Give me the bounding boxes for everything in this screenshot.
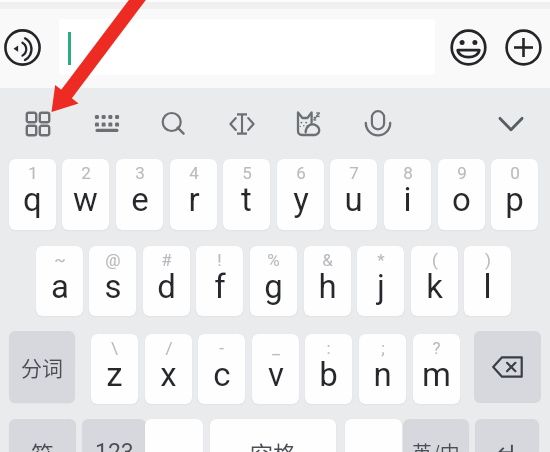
staticText: w [73,180,98,219]
staticText: * [377,250,385,270]
button[interactable]: Backspace [474,331,541,403]
staticText: 3 [135,163,145,183]
button[interactable]: Keyboard layouts [23,109,53,139]
staticText: g [264,267,283,306]
button[interactable]: 分词 [9,331,75,403]
staticText: l [483,267,492,306]
button[interactable]: 7 [330,159,377,230]
staticText: ) [485,250,491,270]
staticText: z [106,355,123,394]
staticText: m [422,355,451,394]
button[interactable]: Hide keyboard [496,109,526,139]
button[interactable]: Keyboard [92,109,122,139]
staticText: d [157,267,176,306]
staticText: 5 [242,163,252,183]
button[interactable]: 9 [438,159,485,230]
button[interactable]: ) [464,246,511,316]
staticText: / [165,338,173,358]
button[interactable]: ! [196,246,243,316]
button[interactable]: * [357,246,404,316]
staticText: 8 [403,163,413,183]
staticText: ; [381,338,385,358]
button[interactable]: # [143,246,190,316]
button[interactable]: % [250,246,297,316]
button[interactable]: 英/中 [403,419,469,452]
staticText: c [213,355,231,394]
button[interactable]: Voice input [363,108,393,138]
button[interactable]: 5 [223,159,270,230]
staticText: ~ [54,250,66,270]
staticText: % [267,250,280,270]
button[interactable]: 1 [9,159,56,230]
staticText: e [131,180,149,219]
staticText: o [452,180,471,219]
staticText: j [377,267,385,306]
button[interactable]: @ [89,246,136,316]
staticText: 123 [95,439,134,452]
button[interactable]: ↵ [475,419,539,452]
staticText: 空格 [250,436,296,452]
button[interactable]: Stickers [295,109,325,139]
staticText: 2 [81,163,91,183]
staticText: 9 [457,163,467,183]
button[interactable]: ? [413,334,460,404]
staticText: b [319,355,338,394]
staticText: 分词 [21,352,63,382]
button[interactable]: 123 [82,419,146,452]
button[interactable]: 符 [9,419,76,452]
button[interactable]: ~ [36,246,83,316]
button[interactable]: Add [505,29,542,66]
button[interactable]: Move cursor [227,109,257,139]
button[interactable]: & [304,246,351,316]
button[interactable] [59,19,435,75]
staticText: ? [432,338,441,358]
button[interactable]: 8 [384,159,431,230]
button[interactable]: ; [359,334,406,404]
staticText: n [373,355,392,394]
staticText: 符 [31,436,54,452]
staticText: ! [217,250,222,270]
button[interactable]: : [305,334,352,404]
staticText: y [293,180,309,219]
button[interactable]: 0 [491,159,538,230]
button[interactable]: Voice input [4,29,41,66]
staticText: 1 [28,163,38,183]
button[interactable]: \ [91,334,138,404]
staticText: 6 [296,163,306,183]
staticText: ↵ [497,438,518,452]
staticText: h [318,267,337,306]
button[interactable]: _ [252,334,299,404]
staticText: v [268,355,284,394]
staticText: p [505,180,524,219]
staticText: x [160,355,177,394]
staticText: - [219,338,224,358]
staticText: s [104,267,122,306]
staticText: t [241,180,252,219]
button[interactable]: Emoji [450,29,487,66]
staticText: 0 [510,163,520,183]
button[interactable]: Search [158,108,188,138]
button[interactable]: 4 [170,159,217,230]
staticText: i [403,180,412,219]
staticText: f [214,267,226,306]
staticText: u [344,180,363,219]
staticText: r [188,180,200,219]
staticText: a [51,267,69,306]
staticText: 4 [189,163,199,183]
staticText: 英/中 [412,438,460,452]
button[interactable]: / [145,334,192,404]
button[interactable]: - [198,334,245,404]
staticText: \ [111,338,118,358]
button[interactable]: 2 [62,159,109,230]
staticText: 7 [349,163,359,183]
button[interactable]: 6 [277,159,324,230]
button[interactable]: 3 [116,159,163,230]
staticText: @ [105,250,121,270]
button[interactable]: 空格 [210,419,336,452]
staticText: & [322,250,333,270]
button[interactable]: ( [411,246,458,316]
